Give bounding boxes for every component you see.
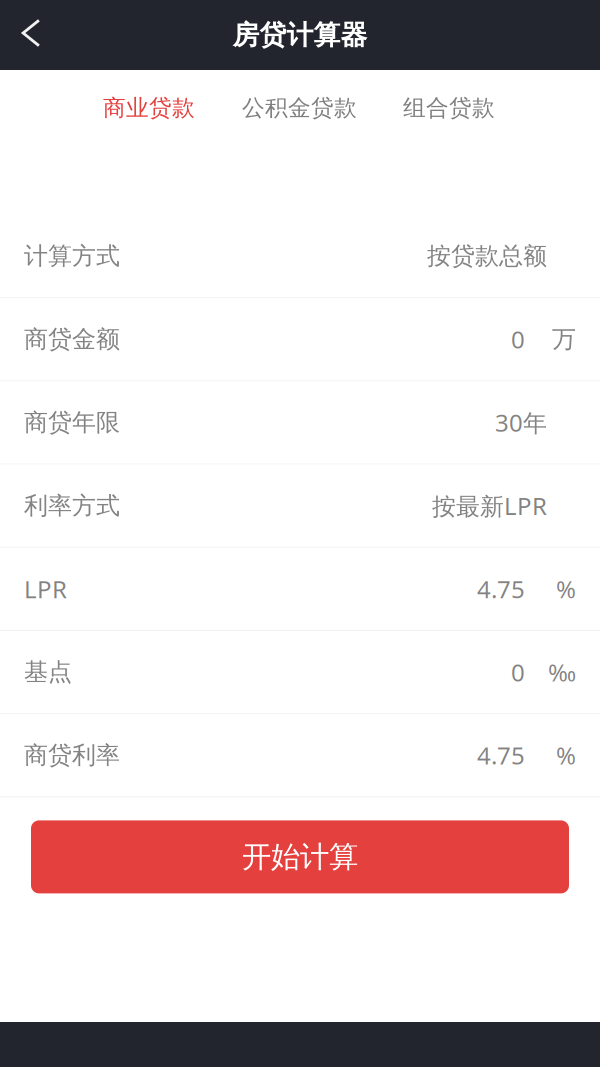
staticText: 4.75 xyxy=(477,739,525,771)
staticText: 0 xyxy=(511,323,525,355)
staticText: % xyxy=(556,573,576,605)
staticText: % xyxy=(556,739,576,771)
button[interactable]: Back xyxy=(0,0,62,70)
staticText: ‰ xyxy=(548,656,576,688)
staticText: 计算方式 xyxy=(24,241,120,271)
button[interactable]: 基点 xyxy=(0,631,600,714)
staticText: 4.75 xyxy=(477,573,525,605)
staticText: 公积金贷款 xyxy=(242,94,357,122)
button[interactable]: 公积金贷款 xyxy=(232,81,367,135)
button[interactable]: 商贷利率 xyxy=(0,714,600,797)
staticText: 基点 xyxy=(24,657,72,687)
staticText: 30年 xyxy=(495,407,547,438)
staticText: 商业贷款 xyxy=(103,94,195,122)
staticText: 万 xyxy=(552,325,576,354)
button[interactable]: 商贷金额 xyxy=(0,298,600,381)
button[interactable]: 开始计算 xyxy=(31,820,569,893)
staticText: 商贷利率 xyxy=(24,741,120,770)
staticText: 0 xyxy=(511,656,525,688)
staticText: 利率方式 xyxy=(24,491,120,520)
staticText: 商贷年限 xyxy=(24,408,120,437)
button[interactable]: LPR xyxy=(0,548,600,631)
button[interactable]: 商贷年限 xyxy=(0,381,600,465)
staticText: LPR xyxy=(24,573,67,605)
staticText: 房贷计算器 xyxy=(232,19,367,51)
staticText: 按贷款总额 xyxy=(427,241,547,271)
button[interactable]: 计算方式 xyxy=(0,215,600,298)
staticText: 商贷金额 xyxy=(24,325,120,354)
staticText: 按最新LPR xyxy=(432,490,547,522)
button[interactable]: 组合贷款 xyxy=(393,81,505,135)
staticText: 开始计算 xyxy=(242,839,358,875)
button[interactable]: 利率方式 xyxy=(0,465,600,548)
staticText: 组合贷款 xyxy=(403,94,495,122)
button[interactable]: 商业贷款 xyxy=(93,81,205,135)
